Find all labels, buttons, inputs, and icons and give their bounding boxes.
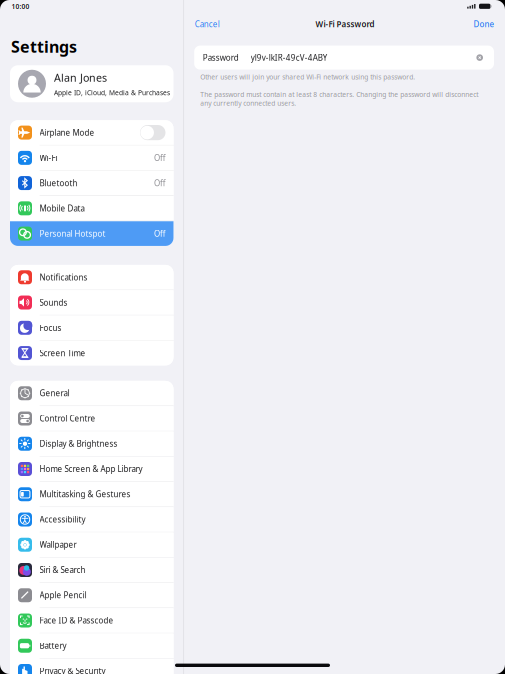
button[interactable]: Apple Pencil [10, 583, 173, 608]
staticText: Personal Hotspot [39, 228, 105, 239]
staticText: Settings [11, 36, 77, 57]
button[interactable]: Password [194, 46, 494, 70]
staticText: Sounds [39, 297, 67, 308]
button[interactable]: Accessibility [10, 507, 173, 532]
button[interactable]: Multitasking & Gestures [10, 482, 173, 507]
button[interactable]: Bluetooth [10, 171, 173, 195]
staticText: Face ID & Passcode [39, 615, 113, 626]
staticText: Battery [39, 640, 66, 651]
button[interactable]: Done [468, 15, 499, 33]
staticText: yl9v-lkIR-49cV-4ABY [251, 52, 328, 63]
button[interactable]: Airplane Mode [10, 120, 173, 145]
button[interactable]: Notifications [10, 265, 173, 290]
staticText: Home Screen & App Library [39, 464, 142, 474]
staticText: Airplane Mode [39, 127, 94, 138]
staticText: Screen Time [39, 348, 85, 358]
button[interactable]: Cancel [190, 15, 225, 33]
staticText: Multitasking & Gestures [39, 489, 130, 499]
staticText: Apple ID, iCloud, Media & Purchases [54, 88, 170, 97]
button[interactable]: Face ID & Passcode [10, 608, 173, 633]
button[interactable]: Privacy & Security [10, 659, 173, 674]
staticText: Alan Jones [54, 70, 107, 85]
staticText: Off [154, 228, 166, 239]
staticText: Bluetooth [39, 178, 77, 188]
staticText: Apple Pencil [39, 590, 86, 600]
staticText: General [39, 388, 69, 398]
button[interactable]: Focus [10, 315, 173, 340]
staticText: Siri & Search [39, 565, 85, 575]
button[interactable]: Home Screen & App Library [10, 457, 173, 481]
button[interactable]: Siri & Search [10, 558, 173, 582]
staticText: Off [154, 152, 166, 163]
button[interactable]: General [10, 381, 173, 406]
staticText: Focus [39, 322, 61, 333]
button[interactable]: Personal Hotspot [10, 221, 173, 246]
staticText: Wi-Fi [39, 152, 57, 163]
staticText: Privacy & Security [39, 666, 105, 674]
staticText: Wi-Fi Password [316, 19, 375, 29]
staticText: Off [154, 178, 166, 188]
staticText: Wallpaper [39, 539, 76, 550]
staticText: Display & Brightness [39, 438, 117, 449]
button[interactable]: Mobile Data [10, 196, 173, 221]
button[interactable]: Sounds [10, 290, 173, 315]
staticText: Notifications [39, 272, 87, 283]
button[interactable]: Control Centre [10, 406, 173, 431]
staticText: Done [473, 19, 494, 29]
staticText: Accessibility [39, 514, 85, 525]
button[interactable]: Alan Jones [10, 65, 173, 102]
staticText: Password [203, 52, 239, 63]
staticText: 10:00 [11, 2, 29, 11]
staticText: Mobile Data [39, 203, 84, 214]
button[interactable]: Screen Time [10, 341, 173, 365]
button[interactable]: Wi-Fi [10, 145, 173, 170]
staticText: Control Centre [39, 413, 95, 424]
staticText: The password must contain at least 8 cha… [200, 90, 478, 108]
button[interactable]: Wallpaper [10, 532, 173, 557]
staticText: Cancel [195, 19, 220, 29]
button[interactable]: Battery [10, 633, 173, 658]
staticText: Other users will join your shared Wi-Fi … [200, 73, 415, 81]
button[interactable]: Display & Brightness [10, 431, 173, 456]
